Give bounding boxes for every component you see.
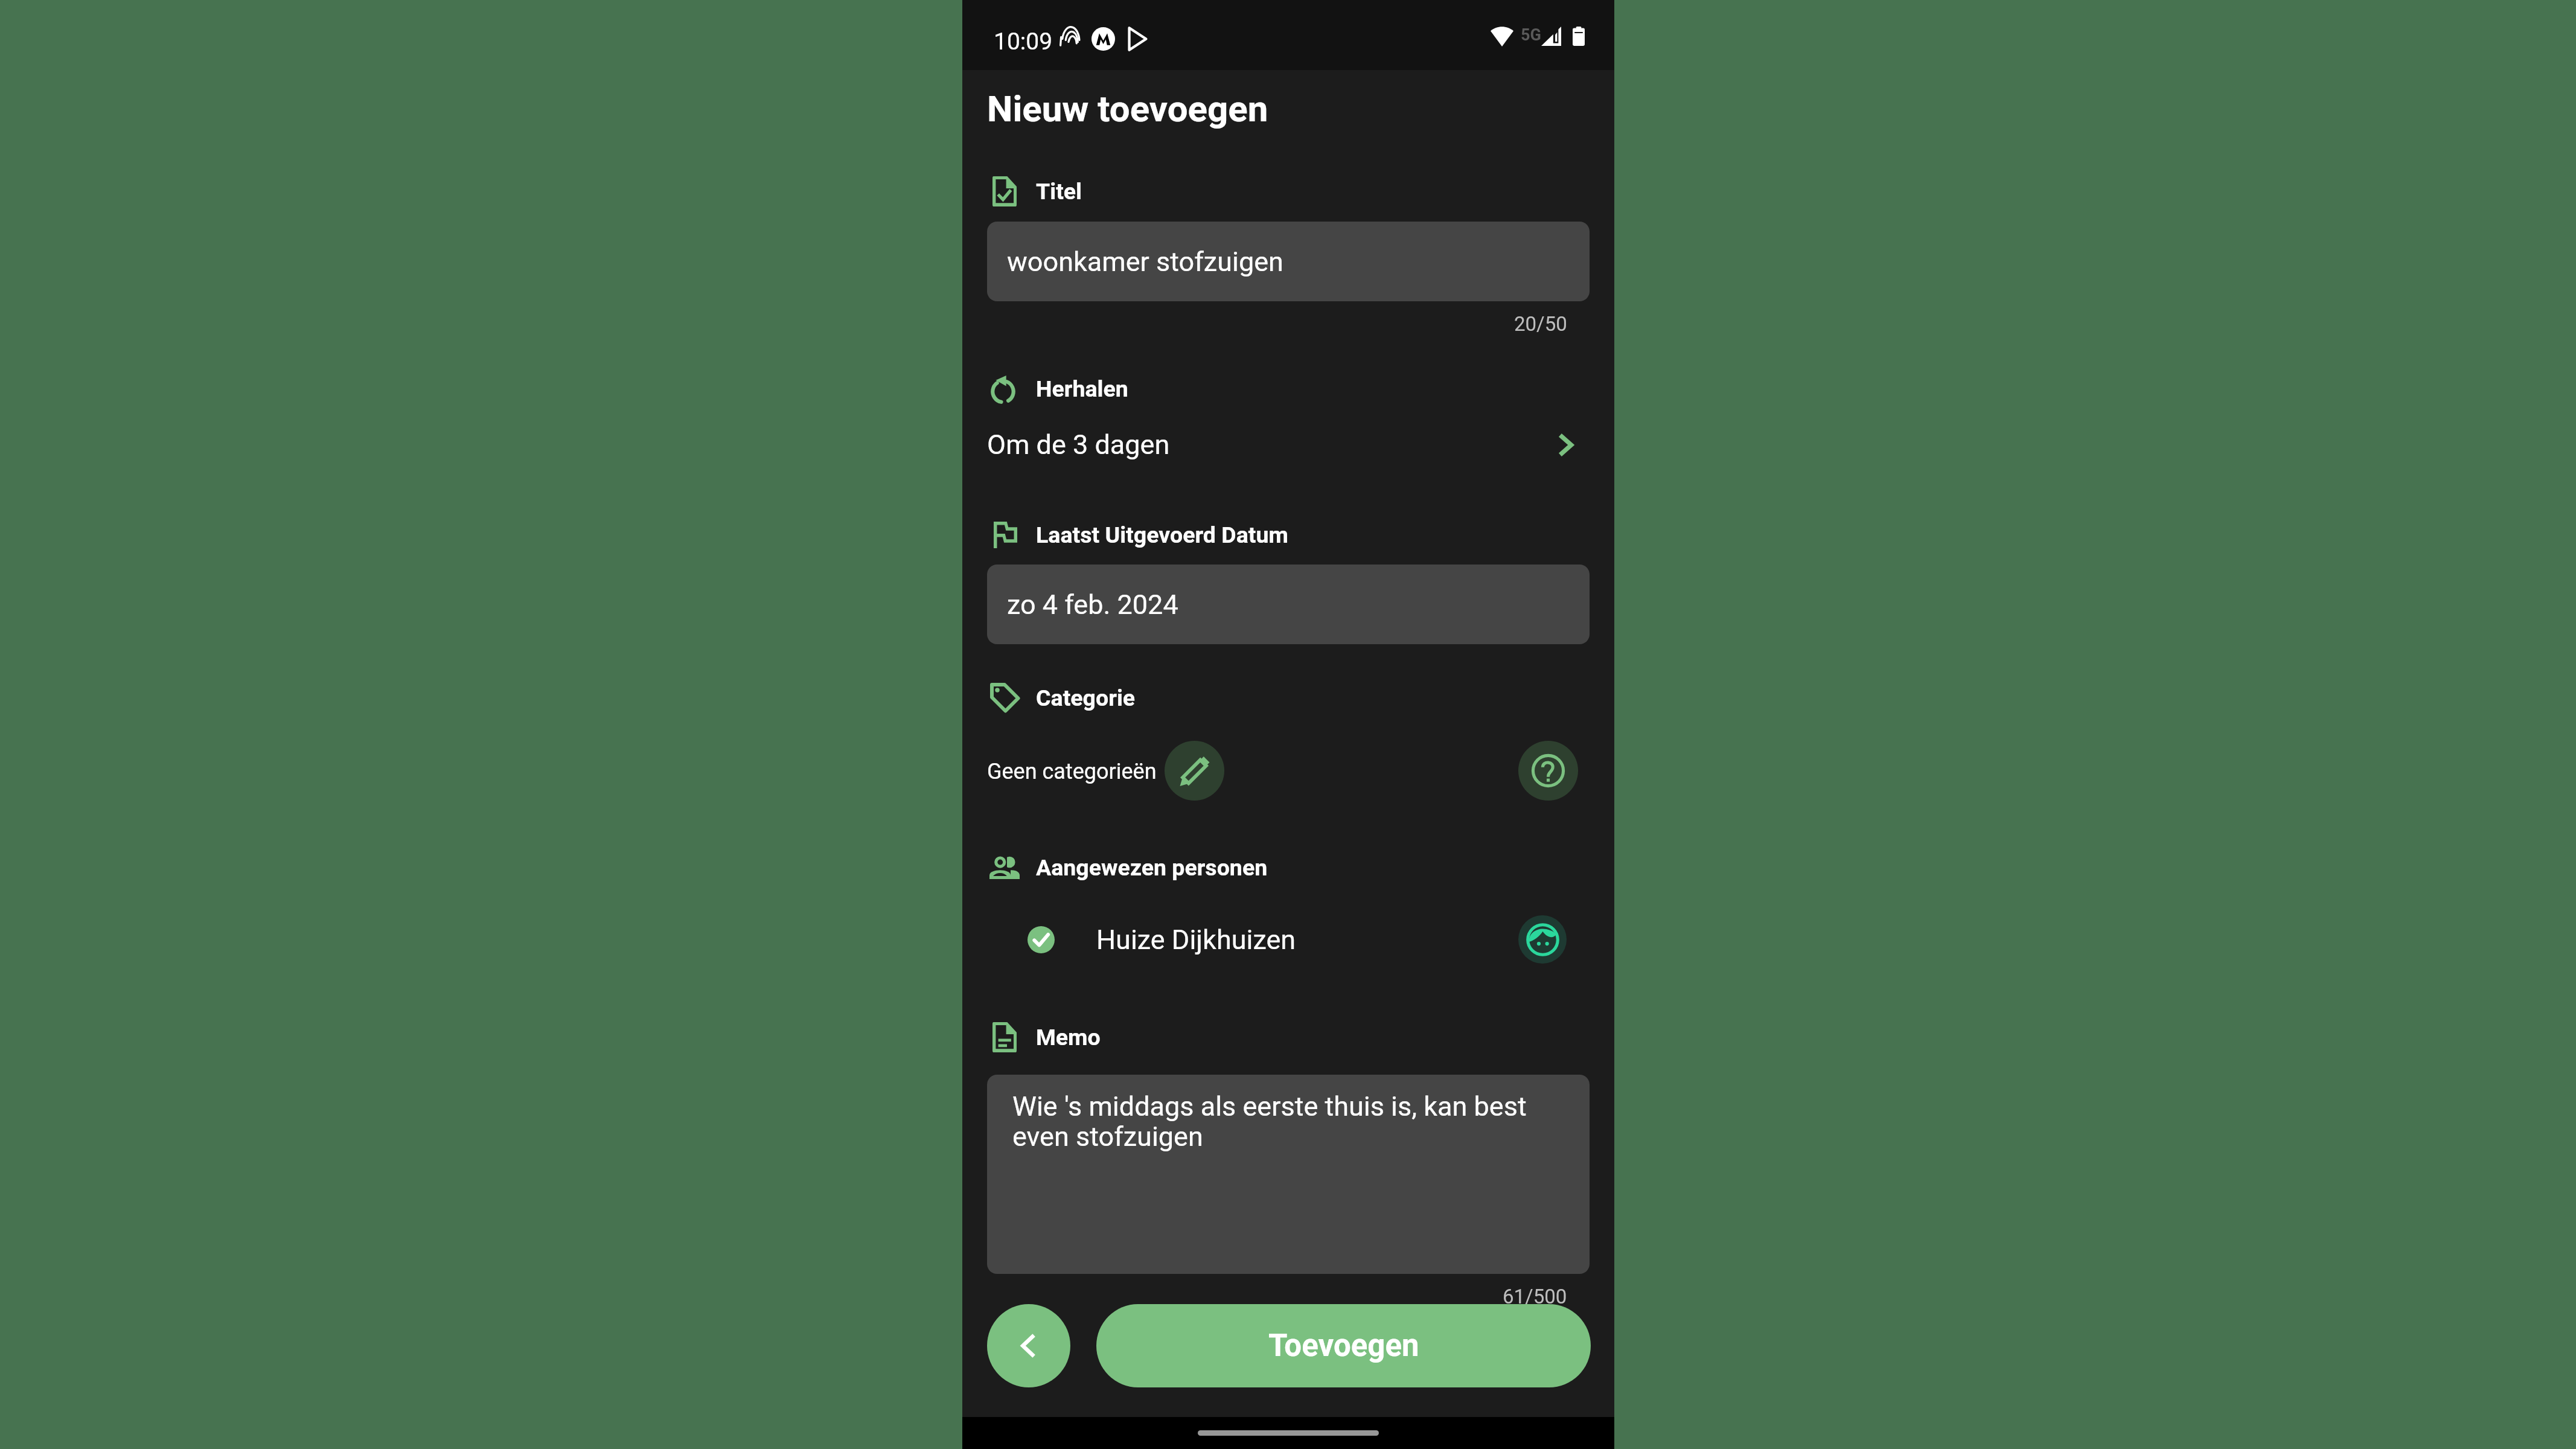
button[interactable]: Om de 3 dagen [987, 418, 1590, 471]
staticText: Categorie [1036, 685, 1136, 711]
staticText: woonkamer stofzuigen [1007, 246, 1283, 278]
button[interactable]: Huize Dijkhuizen [962, 912, 1614, 967]
button[interactable]: Wie 's middags als eerste thuis is, kan … [987, 1075, 1590, 1274]
staticText: Memo [1036, 1024, 1101, 1051]
staticText: Aangewezen personen [1036, 854, 1268, 881]
staticText: Titel [1036, 178, 1082, 205]
staticText: Laatst Uitgevoerd Datum [1036, 522, 1288, 548]
staticText: Wie 's middags als eerste thuis is, kan … [1012, 1090, 1570, 1153]
staticText: Om de 3 dagen [987, 429, 1170, 461]
button[interactable]: Terug [987, 1304, 1070, 1387]
staticText: Geen categorieën [987, 759, 1157, 784]
staticText: zo 4 feb. 2024 [1007, 589, 1178, 621]
button[interactable]: Categorie bewerken [1165, 741, 1224, 801]
button[interactable]: woonkamer stofzuigen [987, 222, 1590, 301]
button[interactable]: Profiel Huize Dijkhuizen [1518, 915, 1567, 964]
staticText: 20/50 [1514, 312, 1567, 336]
staticText: 5G [1521, 25, 1541, 45]
staticText: Nieuw toevoegen [987, 88, 1268, 130]
button[interactable]: Toevoegen [1096, 1304, 1591, 1387]
staticText: Huize Dijkhuizen [1096, 924, 1296, 956]
staticText: 10:09 [994, 28, 1053, 56]
staticText: Herhalen [1036, 376, 1128, 402]
button[interactable]: zo 4 feb. 2024 [987, 565, 1590, 644]
staticText: Toevoegen [1268, 1328, 1419, 1364]
staticText: 61/500 [1503, 1285, 1567, 1308]
button[interactable]: Help [1518, 741, 1578, 801]
